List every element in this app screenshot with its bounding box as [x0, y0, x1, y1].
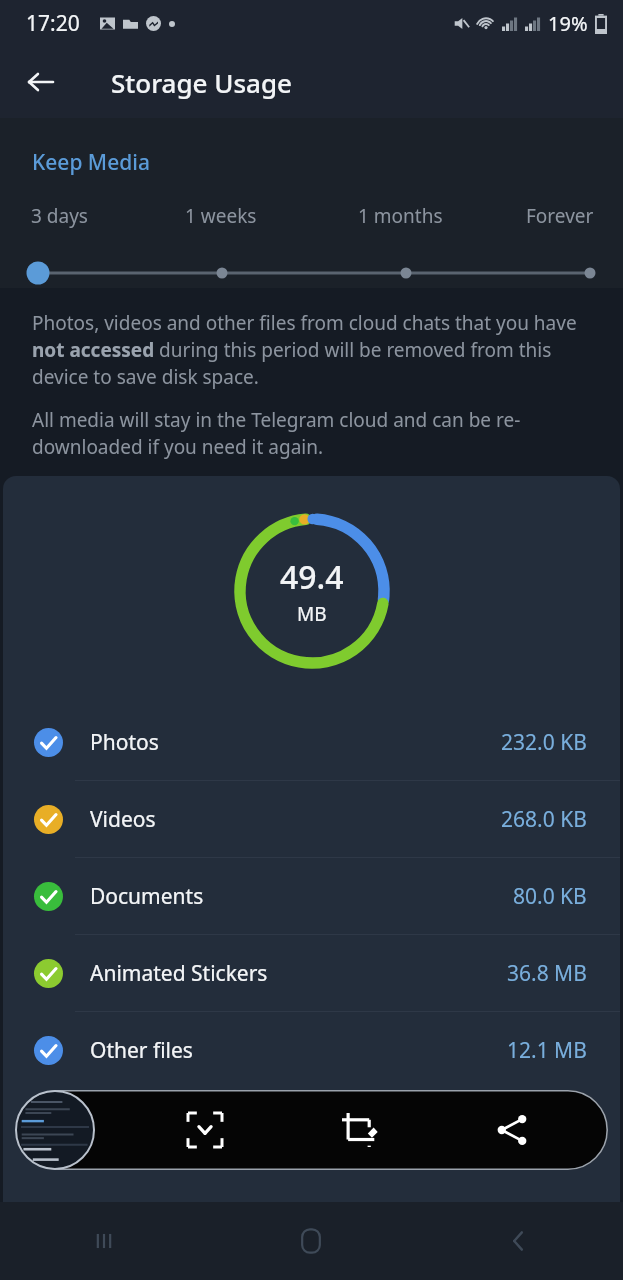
button[interactable]: Documents [3, 858, 620, 934]
staticText: Photos [90, 728, 159, 757]
button[interactable]: Crop and edit [282, 1090, 435, 1170]
staticText: Animated Stickers [90, 959, 268, 988]
staticText: 17:20 [26, 9, 80, 38]
button[interactable]: Back [14, 56, 66, 108]
staticText: 268.0 KB [501, 805, 587, 834]
staticText: Keep Media [32, 148, 150, 177]
staticText: Photos, videos and other files from clou… [32, 310, 589, 390]
staticText: 80.0 KB [513, 882, 587, 911]
button[interactable]: Screenshot preview [15, 1090, 95, 1170]
button[interactable]: Home [207, 1202, 415, 1280]
staticText: 1 weeks [185, 203, 257, 229]
staticText: 232.0 KB [501, 728, 587, 757]
staticText: 19% [548, 10, 588, 37]
staticText: MB [297, 601, 327, 627]
staticText: 49.4 [280, 555, 344, 599]
staticText: 36.8 MB [507, 959, 587, 988]
staticText: 3 days [31, 203, 88, 229]
button[interactable]: Animated Stickers [3, 935, 620, 1011]
button[interactable]: Other files [3, 1012, 620, 1088]
button[interactable]: Photos [3, 704, 620, 780]
button[interactable] [0, 253, 623, 293]
staticText: 1 months [358, 203, 443, 229]
staticText: Documents [90, 882, 204, 911]
staticText: Storage Usage [111, 65, 293, 100]
staticText: All media will stay in the Telegram clou… [32, 407, 553, 460]
button[interactable]: Videos [3, 781, 620, 857]
staticText: Forever [526, 203, 594, 229]
staticText: 12.1 MB [507, 1036, 587, 1065]
staticText: Videos [90, 805, 156, 834]
staticText: Other files [90, 1036, 193, 1065]
button[interactable]: Share [435, 1090, 588, 1170]
button[interactable]: Recents [0, 1202, 207, 1280]
button[interactable]: Scroll capture [128, 1090, 282, 1170]
